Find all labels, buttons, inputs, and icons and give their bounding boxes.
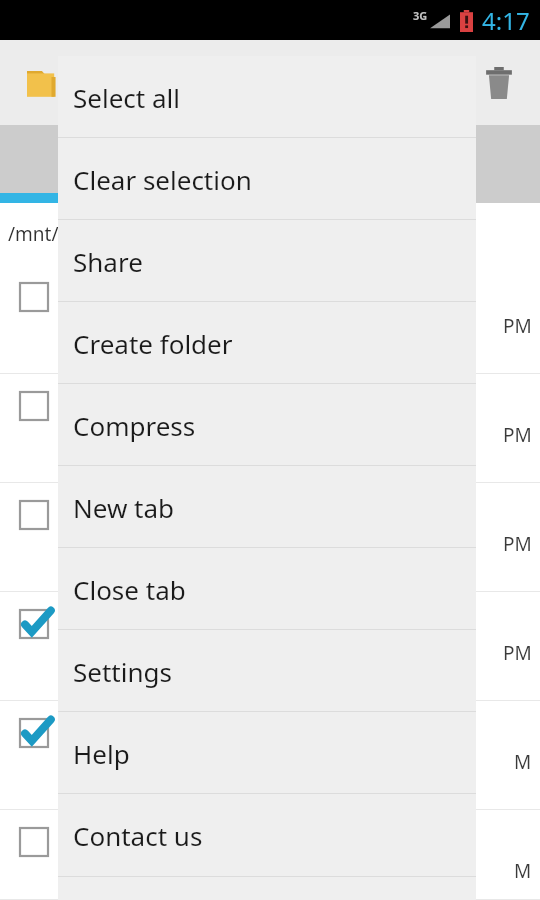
staticText: 4:17 [482, 4, 530, 37]
staticText: M [514, 858, 532, 884]
staticText: M [514, 749, 532, 775]
staticText: PM [503, 313, 532, 339]
button[interactable]: Help [58, 712, 476, 794]
button[interactable]: PM [0, 265, 540, 374]
button[interactable]: PM [0, 483, 540, 592]
staticText: New tab [73, 490, 175, 525]
staticText: Close tab [73, 572, 186, 607]
button[interactable]: PM [0, 592, 540, 701]
button[interactable]: Contact us [58, 794, 476, 876]
button[interactable]: M [0, 810, 540, 900]
staticText: Help [73, 736, 130, 771]
button[interactable]: Settings [58, 630, 476, 712]
button[interactable]: Select all [58, 56, 476, 138]
staticText: PM [503, 640, 532, 666]
button[interactable]: Share [58, 220, 476, 302]
button[interactable]: Clear selection [58, 138, 476, 220]
staticText: Contact us [73, 818, 203, 853]
staticText: 3G [413, 8, 428, 23]
button[interactable]: Compress [58, 384, 476, 466]
button[interactable]: New tab [58, 466, 476, 548]
staticText: Compress [73, 408, 196, 443]
staticText: PM [503, 422, 532, 448]
staticText: Select all [73, 80, 180, 115]
button[interactable]: Close tab [58, 548, 476, 630]
button[interactable]: M [0, 701, 540, 810]
staticText: /mnt/sdcard [8, 221, 119, 247]
staticText: PM [503, 531, 532, 557]
staticText: Create folder [73, 326, 233, 361]
staticText: Clear selection [73, 162, 252, 197]
button[interactable]: PM [0, 374, 540, 483]
staticText: Settings [73, 654, 172, 689]
button[interactable]: Create folder [58, 302, 476, 384]
button[interactable]: Delete [476, 60, 522, 106]
staticText: Share [73, 244, 143, 279]
button[interactable]: Home folder [22, 61, 66, 105]
